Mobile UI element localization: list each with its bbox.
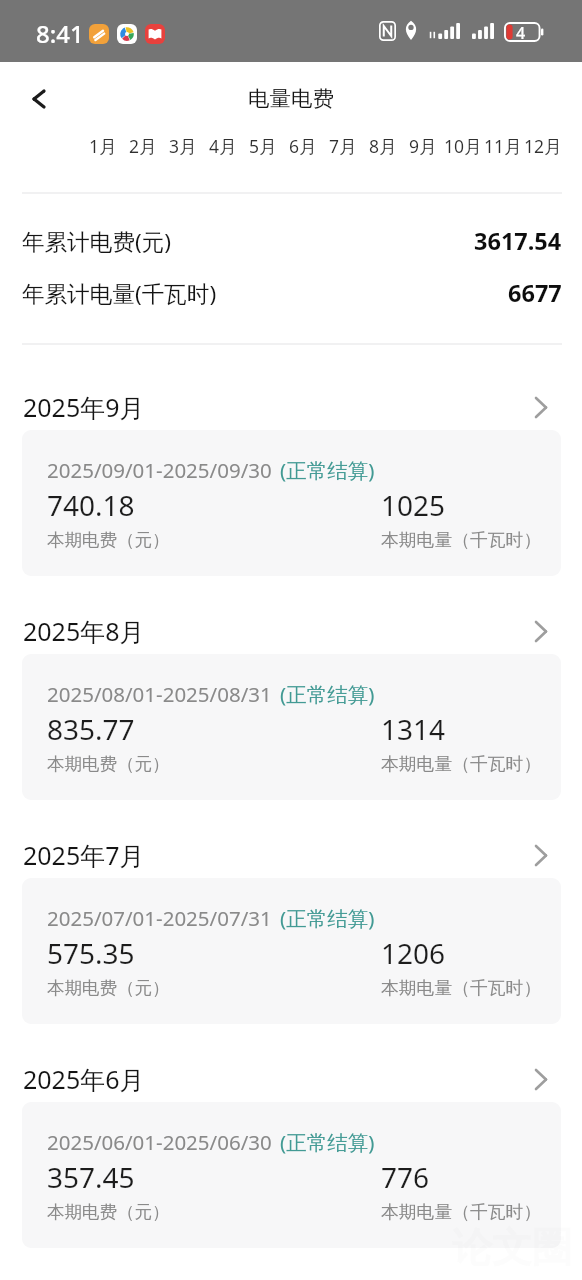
staticText: 电量电费: [0, 85, 582, 112]
staticText: 2025年7月: [23, 838, 145, 872]
staticText: 5月: [249, 134, 277, 158]
button[interactable]: 2025/06/01-2025/06/30: [22, 1102, 561, 1248]
staticText: 本期电费（元）: [47, 1201, 170, 1223]
staticText: (正常结算): [280, 1128, 375, 1156]
staticText: 3月: [169, 134, 197, 158]
staticText: 776: [381, 1158, 430, 1196]
staticText: 本期电量（千瓦时）: [381, 753, 542, 775]
staticText: 8:41: [36, 17, 84, 50]
staticText: 论文圈: [452, 1222, 572, 1272]
button[interactable]: 12月: [523, 133, 563, 159]
button[interactable]: 2025/07/01-2025/07/31: [22, 878, 561, 1024]
button[interactable]: 1月: [83, 133, 123, 159]
staticText: 357.45: [47, 1158, 135, 1196]
button[interactable]: 年累计电费(元): [0, 215, 582, 267]
staticText: 575.35: [47, 934, 135, 972]
button[interactable]: 3月: [163, 133, 203, 159]
button[interactable]: 8月: [363, 133, 403, 159]
staticText: 1月: [89, 134, 117, 158]
button[interactable]: 2025/09/01-2025/09/30: [22, 430, 561, 576]
staticText: 年累计电费(元): [22, 226, 172, 257]
staticText: (正常结算): [280, 904, 375, 932]
staticText: 1314: [381, 710, 446, 748]
button[interactable]: 10月: [443, 133, 483, 159]
button[interactable]: 2025年8月: [0, 607, 582, 655]
other: 查看详情: [535, 846, 546, 865]
staticText: 2025年8月: [23, 614, 145, 648]
staticText: 本期电费（元）: [47, 529, 170, 551]
staticText: 7月: [329, 134, 357, 158]
staticText: 12月: [524, 134, 562, 158]
staticText: 1025: [381, 486, 446, 524]
staticText: 本期电量（千瓦时）: [381, 529, 542, 551]
staticText: 6月: [289, 134, 317, 158]
button[interactable]: 6月: [283, 133, 323, 159]
staticText: 8月: [369, 134, 397, 158]
staticText: 740.18: [47, 486, 135, 524]
other: 查看详情: [535, 622, 546, 641]
staticText: 6677: [508, 277, 562, 309]
staticText: 4: [516, 22, 526, 42]
staticText: 4月: [209, 134, 237, 158]
button[interactable]: 2025年6月: [0, 1055, 582, 1103]
staticText: 2025年9月: [23, 390, 145, 424]
staticText: 9月: [409, 134, 437, 158]
button[interactable]: Back: [15, 75, 63, 123]
other: 查看详情: [535, 398, 546, 417]
staticText: 本期电量（千瓦时）: [381, 1201, 542, 1223]
staticText: 2月: [129, 134, 157, 158]
button[interactable]: 2025/08/01-2025/08/31: [22, 654, 561, 800]
staticText: 2025/07/01-2025/07/31: [47, 904, 272, 932]
staticText: 11月: [484, 134, 522, 158]
button[interactable]: 5月: [243, 133, 283, 159]
button[interactable]: 7月: [323, 133, 363, 159]
staticText: (正常结算): [280, 680, 375, 708]
button[interactable]: 2025年7月: [0, 831, 582, 879]
staticText: 1206: [381, 934, 446, 972]
button[interactable]: 9月: [403, 133, 443, 159]
staticText: 本期电费（元）: [47, 753, 170, 775]
staticText: 2025年6月: [23, 1062, 145, 1096]
button[interactable]: 年累计电量(千瓦时): [0, 267, 582, 319]
staticText: 835.77: [47, 710, 135, 748]
staticText: 3617.54: [474, 225, 562, 257]
other: 查看详情: [535, 1070, 546, 1089]
button[interactable]: 2月: [123, 133, 163, 159]
staticText: 年累计电量(千瓦时): [22, 278, 217, 309]
staticText: 2025/08/01-2025/08/31: [47, 680, 272, 708]
staticText: 2025/09/01-2025/09/30: [47, 456, 272, 484]
button[interactable]: 4月: [203, 133, 243, 159]
staticText: 本期电量（千瓦时）: [381, 977, 542, 999]
button[interactable]: 11月: [483, 133, 523, 159]
staticText: (正常结算): [280, 456, 375, 484]
staticText: 2025/06/01-2025/06/30: [47, 1128, 272, 1156]
staticText: 10月: [444, 134, 482, 158]
button[interactable]: 2025年9月: [0, 383, 582, 431]
staticText: 本期电费（元）: [47, 977, 170, 999]
